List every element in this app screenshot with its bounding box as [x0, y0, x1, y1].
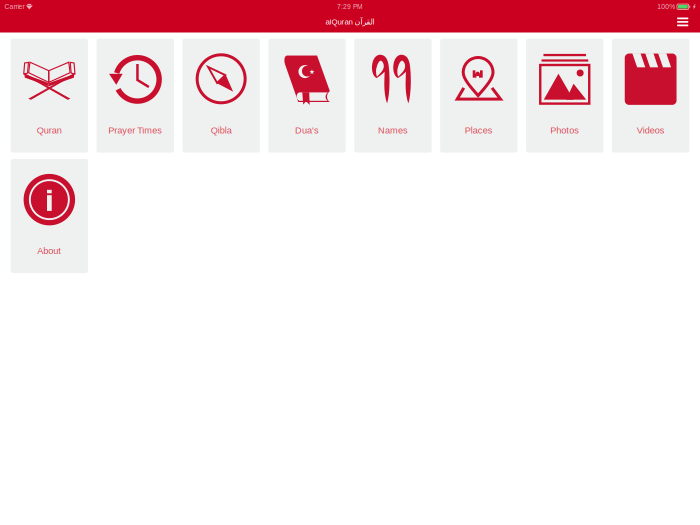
staticText: About [37, 246, 61, 256]
staticText: 7:29 PM [337, 3, 363, 10]
staticText: Qibla [211, 125, 232, 135]
staticText: Quran [37, 125, 62, 135]
staticText: Names [378, 125, 408, 135]
button[interactable]: Names [354, 39, 432, 153]
button[interactable]: Places [440, 39, 518, 153]
staticText: Prayer Times [108, 125, 162, 135]
button[interactable]: Photos [526, 39, 603, 153]
button[interactable]: Dua's [268, 39, 346, 153]
button[interactable]: Quran [11, 39, 88, 153]
staticText: alQuran القرآن [325, 17, 374, 26]
staticText: Dua's [295, 125, 319, 135]
staticText: 100% [657, 3, 675, 10]
button[interactable]: Qibla [182, 39, 260, 153]
button[interactable]: Videos [612, 39, 689, 153]
staticText: Videos [637, 125, 665, 135]
button[interactable]: Prayer Times [97, 39, 174, 153]
staticText: Carrier [4, 3, 24, 10]
button[interactable]: About [11, 159, 88, 273]
staticText: Places [465, 125, 493, 135]
button[interactable]: Menu [667, 15, 700, 31]
staticText: Photos [550, 125, 579, 135]
